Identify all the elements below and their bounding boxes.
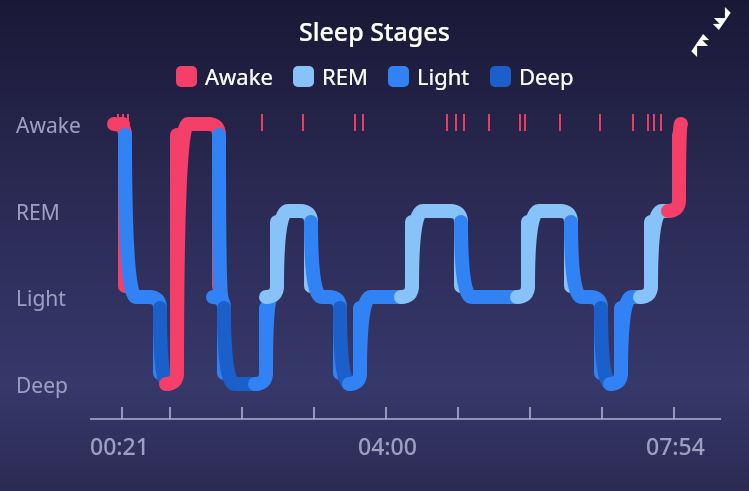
staticText: REM <box>322 61 368 91</box>
staticText: 07:54 <box>646 430 705 461</box>
staticText: 00:21 <box>90 430 149 461</box>
staticText: Deep <box>16 371 68 400</box>
staticText: Light <box>16 284 66 313</box>
button[interactable]: Sleep Stages <box>299 14 450 48</box>
button[interactable]: Awake <box>174 61 275 91</box>
button[interactable]: Deep <box>488 61 576 91</box>
staticText: 04:00 <box>358 430 417 461</box>
button[interactable]: Light <box>386 61 472 91</box>
staticText: Awake <box>205 61 273 91</box>
staticText: Awake <box>16 111 81 140</box>
staticText: Light <box>417 61 470 91</box>
button[interactable]: REM <box>291 61 370 91</box>
staticText: REM <box>16 198 60 227</box>
staticText: Deep <box>519 61 574 91</box>
button[interactable]: Expand chart <box>687 8 735 56</box>
